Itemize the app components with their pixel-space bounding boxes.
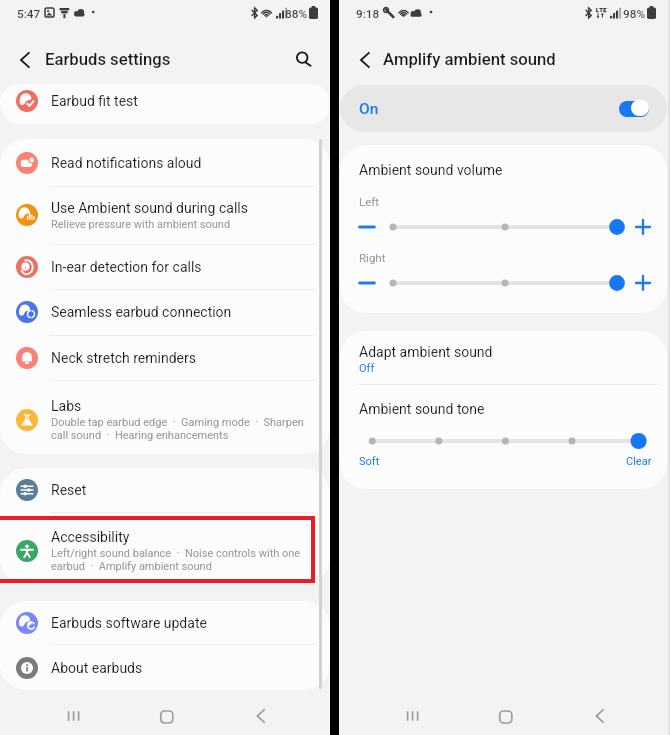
staticText: 5:47 (17, 7, 41, 21)
staticText: Left/right sound balance · Noise control… (51, 547, 309, 573)
staticText: Accessibility (51, 529, 130, 545)
staticText: Labs (51, 398, 82, 414)
button[interactable]: Search (290, 48, 314, 72)
staticText: Neck stretch reminders (51, 350, 196, 366)
staticText: On (359, 100, 379, 118)
staticText: Adapt ambient sound (359, 344, 493, 360)
button[interactable]: About earbuds (0, 644, 330, 690)
button[interactable]: Increase volume (632, 216, 654, 238)
button[interactable]: Back (248, 704, 272, 728)
button[interactable]: Recent apps (401, 706, 425, 730)
staticText: About earbuds (51, 660, 143, 676)
staticText: Earbud fit test (51, 93, 138, 109)
staticText: Earbuds software update (51, 615, 207, 631)
staticText: Ambient sound volume (359, 162, 503, 178)
staticText: 9:18 (356, 7, 380, 21)
staticText: 88% (285, 7, 308, 21)
button[interactable]: Reset (0, 468, 330, 512)
button[interactable]: Earbuds software update (0, 601, 330, 644)
staticText: Clear (626, 455, 652, 468)
staticText: Left (359, 195, 380, 208)
staticText: Seamless earbud connection (51, 304, 232, 320)
button[interactable]: Read notifications aloud (0, 139, 330, 186)
staticText: 98% (623, 7, 646, 21)
button[interactable]: Labs (0, 380, 330, 454)
button[interactable]: Increase volume (632, 272, 654, 294)
staticText: In-ear detection for calls (51, 259, 202, 275)
staticText: Soft (359, 455, 380, 468)
button[interactable]: Back (587, 704, 611, 728)
staticText: Earbuds settings (45, 50, 171, 70)
button[interactable]: Home (494, 706, 518, 730)
staticText: Use Ambient sound during calls (51, 200, 248, 216)
staticText: Ambient sound tone (359, 401, 485, 417)
button[interactable]: Navigate up (12, 48, 36, 72)
staticText: Amplify ambient sound (383, 50, 556, 70)
button[interactable]: Navigate up (352, 48, 376, 72)
staticText: Off (359, 362, 375, 375)
staticText: Reset (51, 482, 87, 498)
staticText: Relieve pressure with ambient sound (51, 218, 231, 231)
button[interactable]: On (340, 85, 667, 132)
staticText: Double tap earbud edge · Gaming mode · S… (51, 416, 309, 442)
button[interactable]: Home (155, 706, 179, 730)
button[interactable]: Earbud fit test (0, 84, 330, 124)
button[interactable]: Decrease volume (356, 216, 378, 238)
button[interactable]: Seamless earbud connection (0, 289, 330, 335)
button[interactable]: Ambient sound tone (364, 432, 647, 450)
button[interactable]: Decrease volume (356, 272, 378, 294)
button[interactable]: Use Ambient sound during calls (0, 186, 330, 244)
button[interactable]: Adapt ambient sound (340, 331, 667, 384)
button[interactable]: Recent apps (62, 706, 86, 730)
staticText: Right (359, 251, 386, 264)
button[interactable]: Neck stretch reminders (0, 335, 330, 381)
button[interactable]: In-ear detection for calls (0, 244, 330, 290)
staticText: Read notifications aloud (51, 155, 202, 171)
button[interactable]: Accessibility (0, 512, 330, 584)
